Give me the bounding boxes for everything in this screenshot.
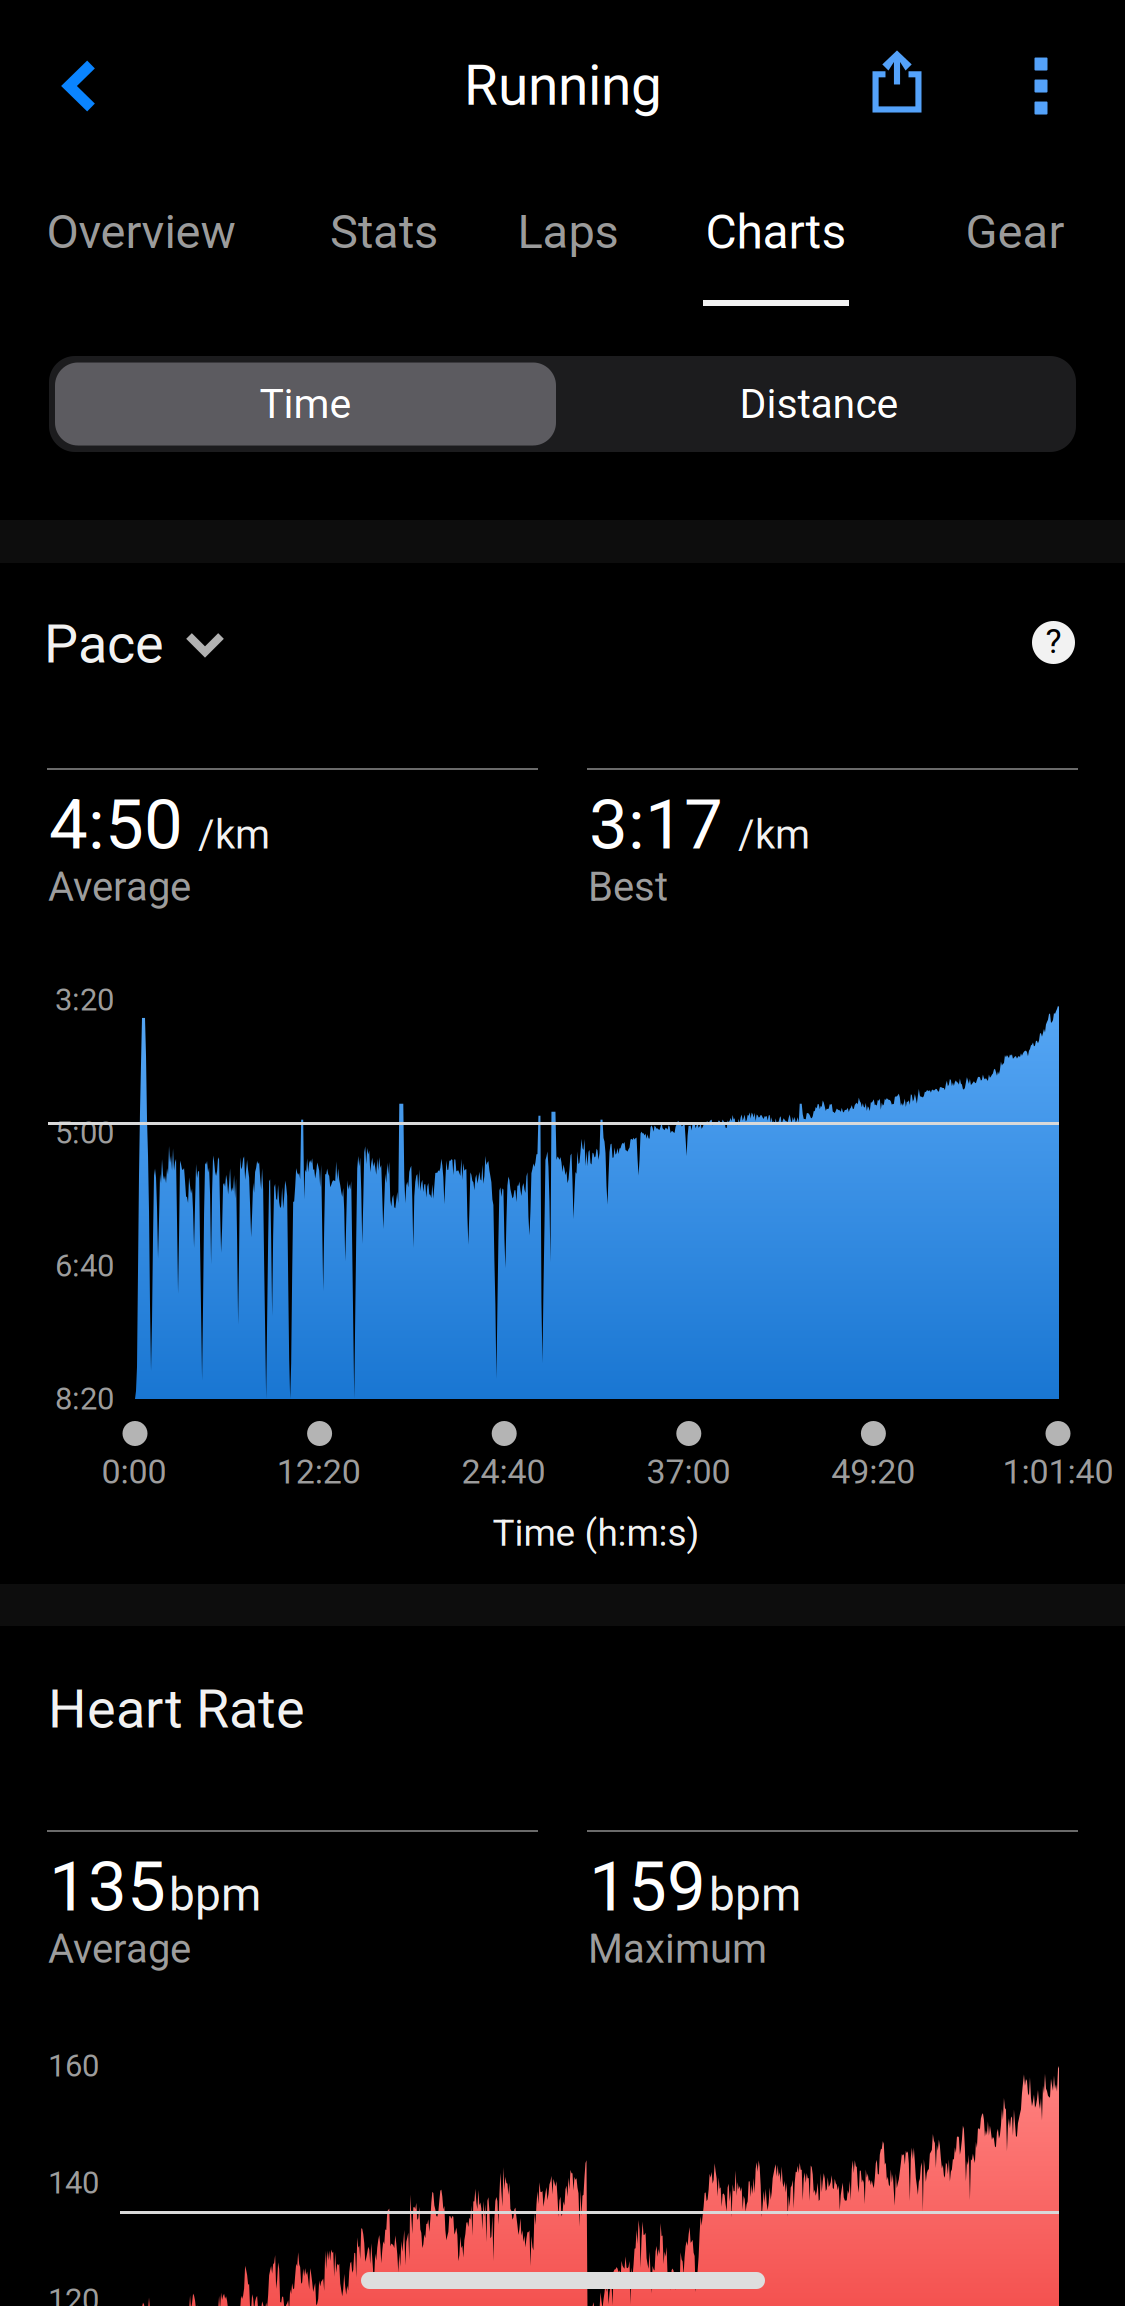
staticText: 49:20 [831,1452,915,1492]
staticText: 3:17 [589,785,723,865]
staticText: Average [48,1926,191,1972]
staticText: 4:50 [49,785,183,865]
staticText: Overview [46,204,235,260]
staticText: Pace [44,612,164,676]
button[interactable]: Help [1016,605,1090,679]
staticText: 120 [48,2282,99,2306]
staticText: 12:20 [277,1452,361,1492]
staticText: bpm [709,1868,801,1922]
staticText: 37:00 [646,1452,730,1492]
staticText: 6:40 [55,1248,114,1284]
button[interactable]: Laps [448,172,688,307]
staticText: /km [738,811,810,858]
staticText: Running [464,54,662,118]
staticText: 135 [49,1847,166,1927]
staticText: Heart Rate [48,1677,305,1741]
staticText: Time (h:m:s) [492,1511,699,1555]
staticText: 1:01:40 [1002,1452,1113,1492]
staticText: Time [259,380,351,428]
staticText: Gear [965,204,1064,260]
button[interactable]: More options [988,6,1094,166]
staticText: 159 [589,1847,706,1927]
staticText: Stats [330,204,438,260]
button[interactable]: Time [49,356,562,452]
staticText: /km [198,811,270,858]
staticText: Charts [705,204,846,260]
staticText: 0:00 [101,1452,166,1492]
staticText: 8:20 [55,1381,114,1417]
staticText: bpm [169,1868,261,1922]
button[interactable]: Back [5,6,155,166]
staticText: ? [1045,622,1061,661]
staticText: Maximum [588,1926,767,1972]
button[interactable]: Charts [656,172,896,307]
staticText: 3:20 [55,982,114,1018]
staticText: Distance [739,380,898,428]
button[interactable]: Pace [48,607,298,681]
button[interactable]: Gear [895,172,1125,307]
staticText: 160 [48,2048,99,2084]
staticText: 24:40 [462,1452,546,1492]
staticText: Average [48,864,191,910]
button[interactable]: Stats [264,172,504,307]
button[interactable]: Overview [21,172,261,307]
staticText: Laps [517,204,618,260]
staticText: 140 [48,2165,99,2201]
button[interactable]: Distance [562,356,1076,452]
button[interactable]: Share [835,1,959,161]
staticText: 5:00 [55,1115,114,1151]
staticText: Best [588,864,668,910]
